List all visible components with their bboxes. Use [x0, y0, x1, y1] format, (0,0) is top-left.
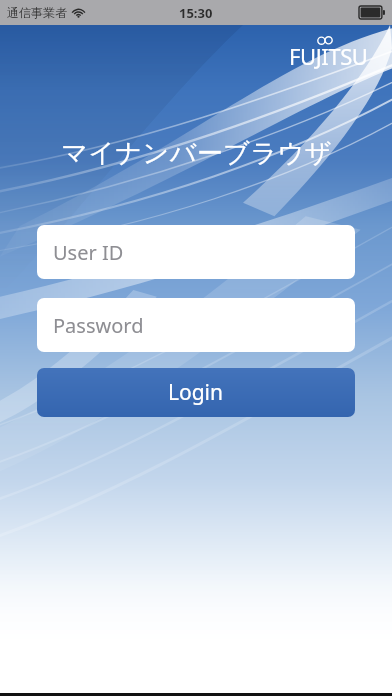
staticText: Login: [168, 378, 224, 407]
staticText: FUJITSU: [289, 41, 368, 71]
staticText: 通信事業者: [7, 5, 67, 20]
button[interactable]: User ID: [37, 225, 355, 279]
button[interactable]: Login: [37, 368, 355, 417]
staticText: User ID: [53, 239, 124, 266]
staticText: 15:30: [179, 4, 213, 22]
staticText: Password: [53, 312, 144, 339]
staticText: マイナンバーブラウザ: [61, 137, 332, 170]
button[interactable]: Password: [37, 298, 355, 352]
